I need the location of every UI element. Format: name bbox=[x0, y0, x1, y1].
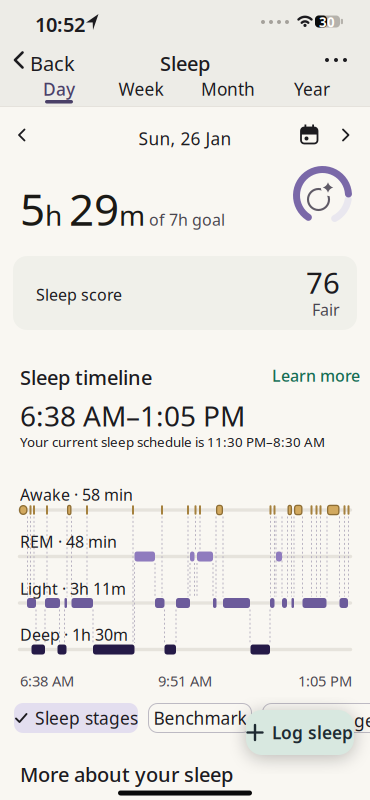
staticText: 6:38 AM bbox=[20, 671, 74, 690]
button[interactable]: Year bbox=[282, 77, 342, 101]
staticText: Learn more bbox=[272, 365, 360, 386]
button[interactable] bbox=[0, 0, 40, 40]
staticText: of 7h goal bbox=[145, 209, 225, 230]
staticText: Your current sleep schedule is 11:30 PM–… bbox=[20, 433, 325, 451]
staticText: Sleep stages bbox=[35, 706, 138, 729]
staticText: Day bbox=[43, 77, 75, 100]
staticText: Month bbox=[201, 77, 255, 100]
staticText: Fair bbox=[312, 299, 340, 320]
button[interactable]: Back bbox=[0, 0, 70, 44]
button[interactable] bbox=[318, 38, 354, 82]
staticText: 6:38 AM–1:05 PM bbox=[20, 397, 245, 434]
staticText: 1:05 PM bbox=[298, 671, 352, 690]
staticText: More about your sleep bbox=[20, 761, 233, 788]
staticText: Deep · 1h 30m bbox=[20, 624, 128, 645]
staticText: Week bbox=[118, 77, 163, 100]
button[interactable]: Benchmark bbox=[148, 703, 252, 733]
button[interactable]: Month bbox=[198, 77, 258, 101]
staticText: Sleep timeline bbox=[20, 364, 152, 391]
staticText: Sleep score bbox=[36, 284, 122, 305]
button[interactable] bbox=[0, 0, 40, 40]
staticText: Log sleep bbox=[272, 721, 353, 744]
staticText: REM · 48 min bbox=[20, 531, 117, 552]
button[interactable]: Sleep stages bbox=[14, 703, 138, 733]
button[interactable] bbox=[0, 0, 40, 40]
staticText: 5h 29m bbox=[20, 179, 145, 238]
staticText: Benchmark bbox=[153, 706, 246, 729]
staticText: gen bbox=[354, 709, 370, 732]
button[interactable]: Day bbox=[29, 77, 89, 101]
staticText: Awake · 58 min bbox=[20, 484, 133, 505]
staticText: 30 bbox=[319, 13, 335, 31]
button[interactable]: gen bbox=[262, 703, 370, 733]
staticText: 76 bbox=[306, 263, 340, 302]
staticText: 10:52 bbox=[35, 11, 85, 38]
staticText: 9:51 AM bbox=[158, 671, 212, 690]
staticText: Sleep bbox=[160, 50, 210, 77]
staticText: Light · 3h 11m bbox=[20, 578, 126, 599]
staticText: Year bbox=[294, 77, 330, 100]
staticText: Back bbox=[30, 50, 75, 77]
button[interactable]: Log sleep bbox=[246, 710, 354, 755]
button[interactable]: Week bbox=[111, 77, 171, 101]
button[interactable]: Learn more bbox=[272, 365, 360, 386]
staticText: Sun, 26 Jan bbox=[138, 127, 231, 150]
